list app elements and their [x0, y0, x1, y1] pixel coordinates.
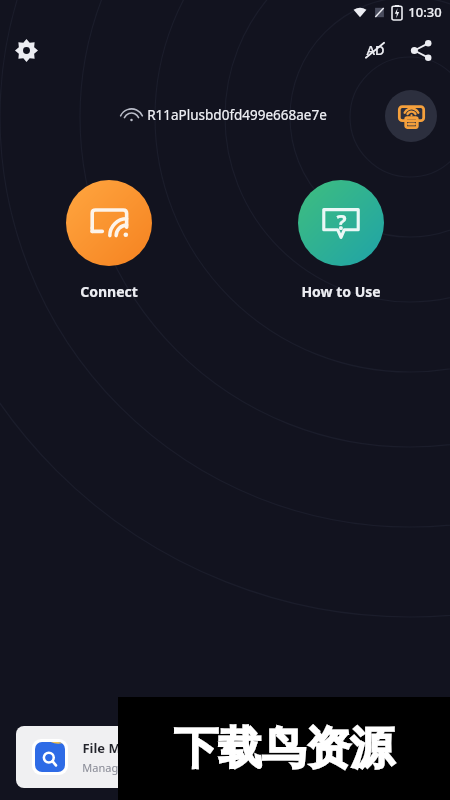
staticText: ? [336, 208, 347, 237]
staticText: 10:30 [408, 3, 442, 21]
staticText: AD [366, 41, 385, 59]
button[interactable]: Remove ads [354, 29, 396, 71]
staticText: 下载鸟资源 [174, 721, 394, 776]
button[interactable]: Settings [6, 30, 46, 70]
staticText: How to Use [301, 282, 381, 301]
button[interactable]: Connect [62, 180, 156, 301]
button[interactable]: File Manager [16, 726, 434, 788]
button[interactable]: ? [294, 180, 388, 301]
staticText: File Manager [82, 739, 167, 757]
button[interactable]: Printer [385, 90, 437, 142]
staticText: Manage your files [82, 760, 175, 775]
staticText: Connect [80, 282, 138, 301]
staticText: R11aPlusbd0fd499e668ae7e [147, 106, 327, 124]
button[interactable]: Share [400, 29, 442, 71]
